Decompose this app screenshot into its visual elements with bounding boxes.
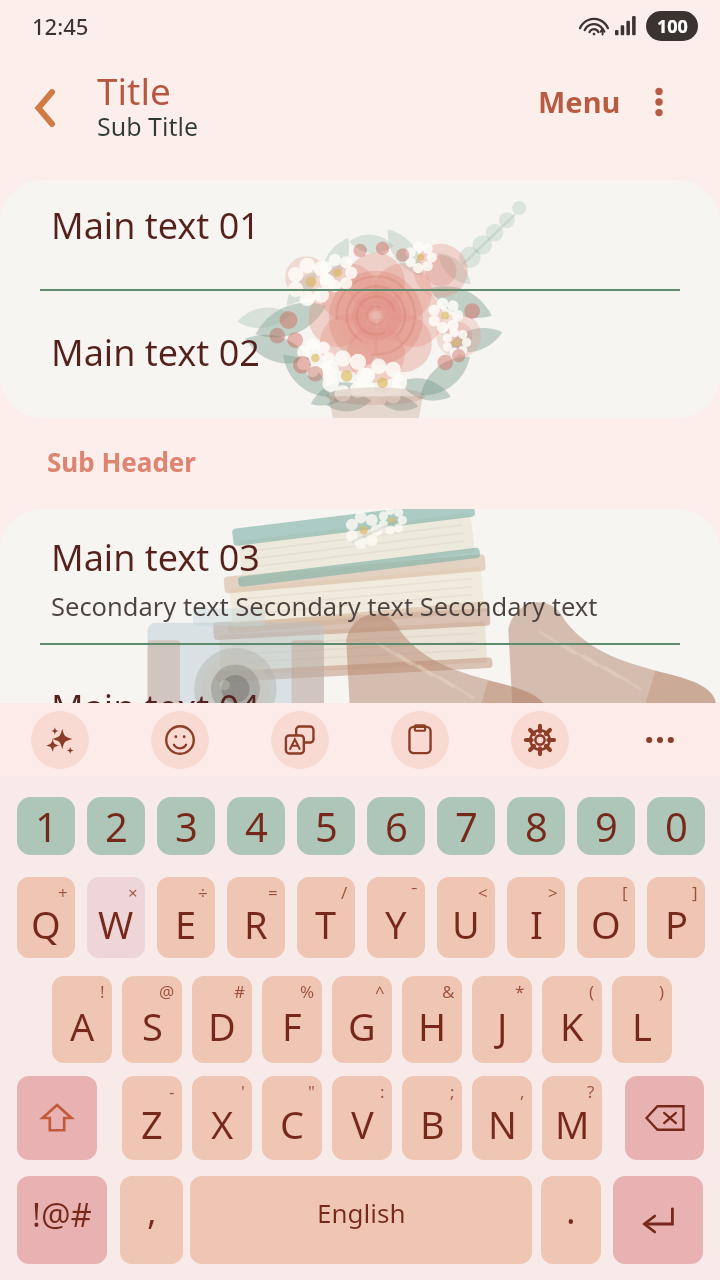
button[interactable]: R (227, 877, 285, 958)
button[interactable]: Main text 03 (0, 509, 720, 624)
button[interactable]: F (262, 976, 322, 1063)
button[interactable]: 4 (227, 797, 285, 855)
staticText: Sub Header (47, 444, 196, 479)
button[interactable]: X (192, 1076, 252, 1160)
button[interactable]: S (122, 976, 182, 1063)
button[interactable]: Clipboard (360, 703, 480, 777)
button[interactable]: 9 (577, 797, 635, 855)
staticText: D (208, 1000, 236, 1052)
staticText: : (380, 1080, 385, 1103)
button[interactable]: Translate (240, 703, 360, 777)
button[interactable]: D (192, 976, 252, 1063)
button[interactable]: Z (122, 1076, 182, 1160)
staticText: S (142, 1000, 163, 1052)
button[interactable]: Emoji (120, 703, 240, 777)
staticText: 100 (657, 14, 688, 39)
button[interactable]: L (612, 976, 672, 1063)
staticText: ) (659, 980, 665, 1003)
staticText: 0 (665, 799, 688, 853)
staticText: ( (589, 980, 595, 1003)
staticText: A (70, 1000, 95, 1052)
staticText: O (591, 898, 621, 950)
staticText: 1 (35, 799, 58, 853)
button[interactable]: A (52, 976, 112, 1063)
button[interactable]: B (402, 1076, 462, 1160)
staticText: / (341, 881, 348, 904)
staticText: English (317, 1195, 406, 1230)
staticText: W (98, 898, 134, 950)
staticText: U (452, 898, 480, 950)
staticText: L (632, 1000, 652, 1052)
staticText: [ (622, 881, 628, 904)
button[interactable]: 6 (367, 797, 425, 855)
staticText: Main text 04 (51, 683, 260, 725)
staticText: N (488, 1098, 517, 1150)
staticText: 6 (385, 799, 408, 853)
staticText: = (268, 881, 278, 904)
button[interactable]: Q (17, 877, 75, 958)
button[interactable]: 7 (437, 797, 495, 855)
button[interactable]: 8 (507, 797, 565, 855)
button[interactable]: J (472, 976, 532, 1063)
button[interactable]: Enter (613, 1176, 703, 1264)
button[interactable]: U (437, 877, 495, 958)
staticText: Z (141, 1098, 163, 1150)
button[interactable]: More options (631, 74, 687, 130)
staticText: Sub Title (97, 109, 198, 143)
button[interactable]: 1 (17, 797, 75, 855)
button[interactable]: More (600, 703, 720, 777)
button[interactable]: Main text 01 (0, 180, 720, 289)
button[interactable]: Settings (480, 703, 600, 777)
button[interactable]: P (647, 877, 705, 958)
button[interactable]: 2 (87, 797, 145, 855)
button[interactable]: E (157, 877, 215, 958)
staticText: 9 (595, 799, 618, 853)
button[interactable]: N (472, 1076, 532, 1160)
staticText: Secondary text Secondary text Secondary … (51, 589, 598, 624)
staticText: - (169, 1080, 175, 1103)
staticText: Main text 02 (51, 328, 260, 377)
staticText: E (175, 898, 197, 950)
button[interactable]: 0 (647, 797, 705, 855)
staticText: Menu (538, 82, 621, 121)
staticText: ] (692, 881, 698, 904)
staticText: * (515, 980, 525, 1003)
button[interactable]: T (297, 877, 355, 958)
button[interactable]: English (190, 1176, 532, 1264)
button[interactable]: I (507, 877, 565, 958)
button[interactable]: . (541, 1176, 601, 1264)
button[interactable]: W (87, 877, 145, 958)
button[interactable]: Main text 02 (0, 291, 720, 418)
staticText: !@# (32, 1192, 92, 1237)
staticText: 4 (245, 799, 268, 853)
button[interactable]: 5 (297, 797, 355, 855)
staticText: Main text 01 (51, 201, 260, 250)
button[interactable]: Backspace (625, 1076, 704, 1160)
staticText: H (418, 1000, 447, 1052)
staticText: ! (100, 980, 105, 1003)
button[interactable]: Shift (17, 1076, 97, 1160)
staticText: T (315, 898, 337, 950)
staticText: X (211, 1098, 234, 1150)
button[interactable]: M (542, 1076, 602, 1160)
button[interactable]: O (577, 877, 635, 958)
button[interactable]: 3 (157, 797, 215, 855)
button[interactable]: C (262, 1076, 322, 1160)
button[interactable]: , (120, 1176, 183, 1264)
staticText: @ (159, 980, 175, 1003)
button[interactable]: K (542, 976, 602, 1063)
staticText: I (530, 898, 543, 950)
button[interactable]: AI suggestions (0, 703, 120, 777)
button[interactable]: Y (367, 877, 425, 958)
staticText: R (244, 898, 268, 950)
staticText: B (420, 1098, 445, 1150)
button[interactable]: G (332, 976, 392, 1063)
button[interactable]: !@# (17, 1176, 107, 1264)
button[interactable]: Menu (528, 72, 631, 131)
button[interactable]: Main text 04 (0, 645, 720, 725)
button[interactable]: V (332, 1076, 392, 1160)
staticText: ' (241, 1080, 245, 1103)
button[interactable]: H (402, 976, 462, 1063)
staticText: Y (385, 898, 407, 950)
button[interactable]: Back (17, 79, 75, 137)
